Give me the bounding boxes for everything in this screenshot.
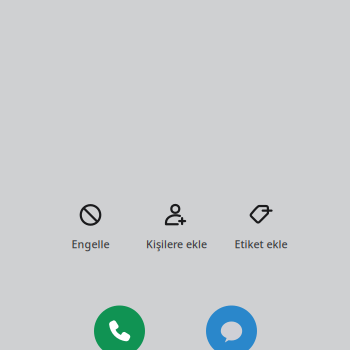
button[interactable]: Engelle (35, 203, 145, 251)
button[interactable]: Mesaj (206, 305, 257, 350)
staticText: Kişilere ekle (146, 237, 207, 251)
button[interactable]: Ara (94, 305, 145, 350)
button[interactable]: Etiket ekle (206, 203, 316, 251)
button[interactable]: Kişilere ekle (121, 203, 231, 251)
staticText: Engelle (71, 237, 109, 251)
staticText: Etiket ekle (234, 237, 287, 251)
